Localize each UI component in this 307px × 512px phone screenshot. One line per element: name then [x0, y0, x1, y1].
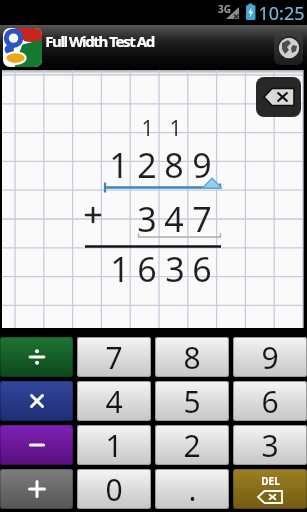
- button[interactable]: [0, 425, 73, 465]
- staticText: 7: [105, 337, 123, 377]
- button[interactable]: 3: [233, 425, 307, 465]
- staticText: 9: [261, 337, 279, 377]
- staticText: 10:25: [258, 1, 305, 24]
- staticText: 1: [110, 246, 130, 290]
- staticText: 1: [105, 425, 123, 465]
- staticText: 9: [192, 142, 212, 186]
- staticText: 8: [183, 337, 201, 377]
- staticText: 2: [137, 142, 157, 186]
- button[interactable]: 4: [77, 381, 151, 421]
- staticText: 4: [164, 196, 184, 240]
- staticText: 3: [261, 425, 279, 465]
- staticText: .: [188, 469, 197, 509]
- button[interactable]: 7: [77, 337, 151, 377]
- staticText: Full Width Test Ad: [45, 31, 154, 51]
- staticText: 7: [192, 196, 212, 240]
- button[interactable]: [274, 31, 303, 65]
- button[interactable]: Full Width Test Ad: [0, 25, 307, 70]
- button[interactable]: 0: [77, 469, 151, 509]
- staticText: 1: [169, 114, 182, 143]
- staticText: 6: [137, 246, 157, 290]
- button[interactable]: [256, 77, 301, 117]
- button[interactable]: 1: [77, 425, 151, 465]
- staticText: 2: [183, 425, 201, 465]
- staticText: 8: [164, 142, 184, 186]
- staticText: 5: [183, 381, 201, 421]
- staticText: 0: [105, 469, 123, 509]
- button[interactable]: 9: [233, 337, 307, 377]
- staticText: 3: [165, 246, 185, 290]
- button[interactable]: [0, 469, 73, 509]
- button[interactable]: [0, 381, 73, 421]
- staticText: 4: [105, 381, 123, 421]
- staticText: DEL: [261, 474, 280, 488]
- button[interactable]: [0, 337, 73, 377]
- staticText: 6: [192, 246, 212, 290]
- staticText: 3G: [218, 2, 231, 16]
- button[interactable]: DEL: [233, 469, 307, 509]
- button[interactable]: 2: [155, 425, 229, 465]
- staticText: 3: [137, 196, 157, 240]
- button[interactable]: 5: [155, 381, 229, 421]
- button[interactable]: 8: [155, 337, 229, 377]
- button[interactable]: 6: [233, 381, 307, 421]
- button[interactable]: .: [155, 469, 229, 509]
- staticText: 6: [261, 381, 279, 421]
- staticText: 1: [141, 114, 154, 143]
- staticText: 1: [109, 142, 129, 186]
